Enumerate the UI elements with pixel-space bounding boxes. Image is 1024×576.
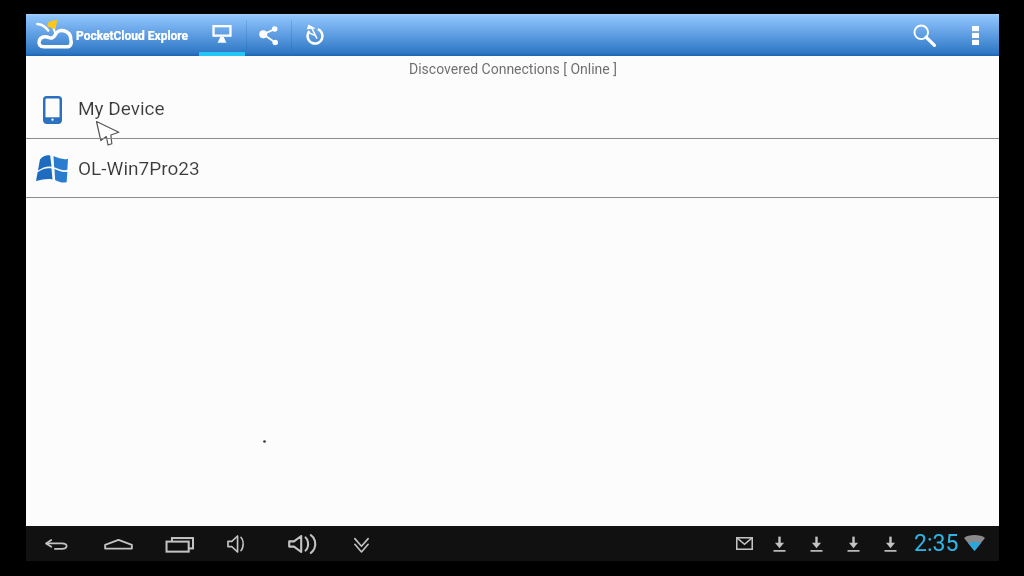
staticText: 2:35: [914, 530, 959, 557]
button[interactable]: Search: [903, 14, 947, 56]
button[interactable]: Recents: [162, 527, 196, 561]
button[interactable]: OL-Win7Pro23: [26, 139, 999, 197]
button[interactable]: Home: [101, 527, 135, 561]
staticText: PocketCloud Explore: [76, 29, 189, 43]
button[interactable]: Back: [40, 527, 74, 561]
button[interactable]: Volume up: [286, 527, 320, 561]
button[interactable]: Share: [245, 14, 291, 56]
button[interactable]: More options: [955, 14, 995, 56]
staticText: OL-Win7Pro23: [78, 157, 200, 179]
staticText: My Device: [78, 97, 165, 119]
button[interactable]: My Device: [26, 82, 999, 138]
button[interactable]: Volume down: [222, 527, 256, 561]
button[interactable]: Collapse: [344, 527, 378, 561]
button[interactable]: Refresh: [292, 14, 338, 56]
button[interactable]: Devices: [199, 14, 245, 56]
staticText: Discovered Connections [ Online ]: [409, 61, 617, 77]
